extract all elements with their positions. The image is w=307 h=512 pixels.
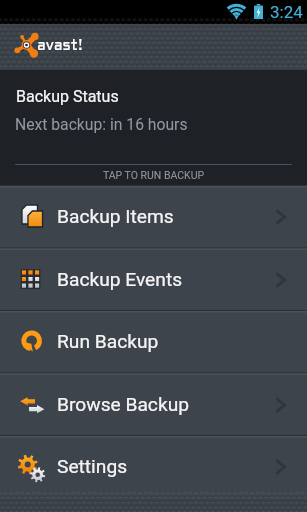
staticText: Backup Items [57,205,174,228]
button[interactable]: Backup Status [0,70,307,185]
button[interactable]: Backup Events [0,248,307,311]
button[interactable]: Settings [0,435,307,498]
staticText: Backup Events [57,268,183,291]
staticText: Run Backup [57,330,159,353]
button[interactable]: Run Backup [0,310,307,373]
staticText: Next backup: in 16 hours [15,115,188,133]
staticText: Browse Backup [57,393,189,416]
button[interactable]: Browse Backup [0,373,307,436]
button[interactable]: Backup Items [0,185,307,248]
staticText: 3:24 [270,2,303,22]
staticText: Backup Status [16,87,119,106]
staticText: TAP TO RUN BACKUP [0,169,307,181]
staticText: Settings [57,455,128,478]
staticText: avast! [37,40,83,53]
